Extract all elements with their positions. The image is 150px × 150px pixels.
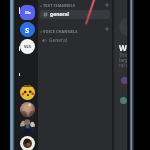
staticText: MLN xyxy=(24,45,31,49)
staticText: ral c xyxy=(119,62,128,68)
button[interactable]: Server xyxy=(20,136,35,150)
button[interactable]: Server xyxy=(20,22,35,37)
staticText: This i xyxy=(119,52,131,58)
staticText: TEXT CHANNELS xyxy=(43,3,75,8)
button[interactable]: Server xyxy=(20,119,35,134)
button[interactable]: Server xyxy=(20,102,35,117)
staticText: VOICE CHANNELS xyxy=(43,29,78,34)
button[interactable]: Server xyxy=(20,5,35,20)
staticText: general xyxy=(50,11,70,18)
button[interactable]: Add text channel xyxy=(104,2,110,8)
staticText: begi xyxy=(119,57,129,63)
button[interactable]: Server xyxy=(20,39,35,54)
staticText: S xyxy=(25,25,30,35)
button[interactable]: Add voice channel xyxy=(104,26,110,32)
button[interactable]: Server xyxy=(20,85,35,100)
button[interactable]: VOICE CHANNELS xyxy=(39,29,78,34)
staticText: Ms xyxy=(25,10,31,15)
button[interactable]: TEXT CHANNELS xyxy=(39,3,75,8)
button[interactable]: General xyxy=(42,37,102,44)
button[interactable]: general xyxy=(40,10,110,19)
staticText: General xyxy=(49,37,67,44)
staticText: We xyxy=(119,42,132,53)
